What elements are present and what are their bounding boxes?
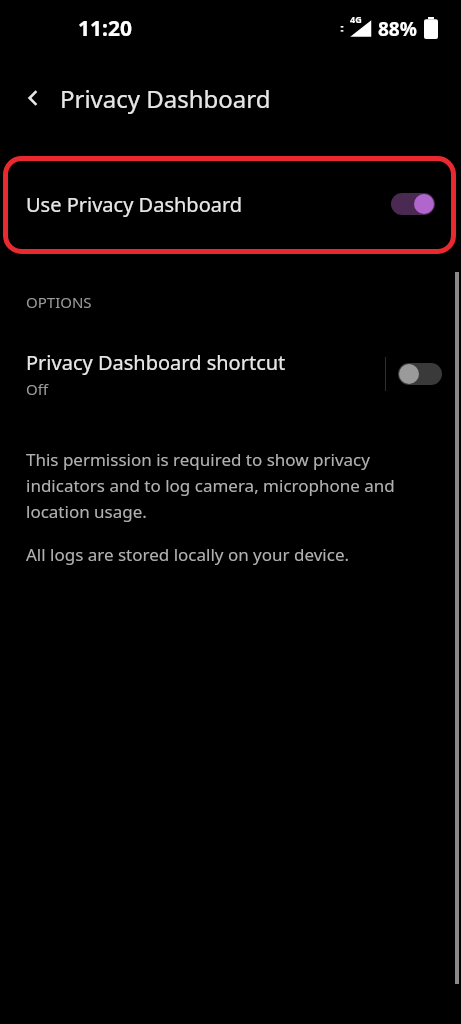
button[interactable]: Privacy Dashboard shortcut bbox=[0, 338, 461, 410]
staticText: OPTIONS bbox=[26, 292, 92, 312]
staticText: Privacy Dashboard shortcut bbox=[26, 349, 286, 376]
staticText: Off bbox=[26, 379, 49, 399]
staticText: Privacy Dashboard bbox=[60, 82, 271, 115]
staticText: 11:20 bbox=[78, 14, 132, 43]
staticText: 88% bbox=[378, 16, 417, 42]
button[interactable]: Use Privacy Dashboard bbox=[0, 158, 461, 250]
button[interactable]: Toggle on bbox=[391, 193, 435, 215]
staticText: Use Privacy Dashboard bbox=[26, 191, 243, 218]
button[interactable]: Toggle off bbox=[398, 363, 442, 385]
staticText: All logs are stored locally on your devi… bbox=[26, 543, 350, 566]
staticText: 4G bbox=[350, 13, 362, 25]
staticText: This permission is required to show priv… bbox=[26, 448, 439, 523]
button[interactable]: Back bbox=[14, 78, 54, 118]
